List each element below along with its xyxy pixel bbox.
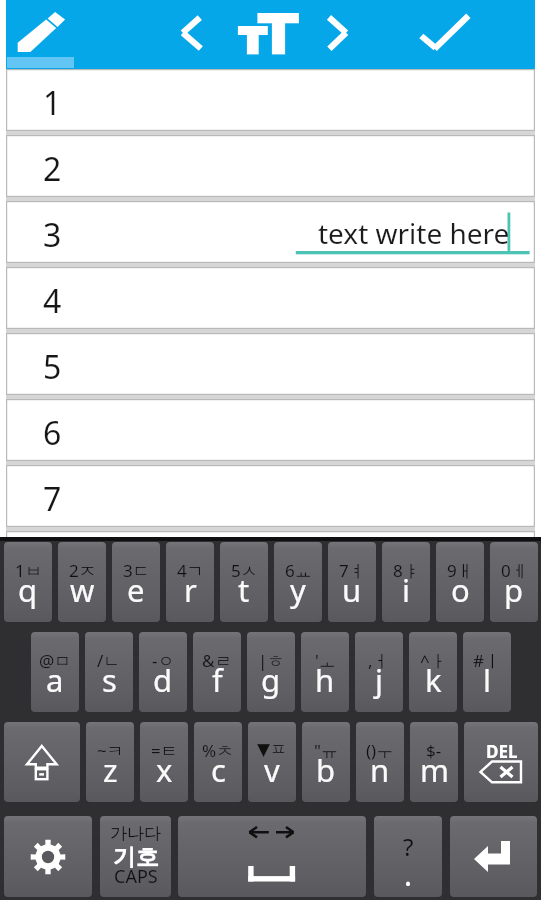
button[interactable]: $- [410, 722, 458, 802]
staticText: CAPS [114, 864, 158, 889]
button[interactable]: @ㅁ [31, 632, 79, 712]
button[interactable]: 'ㅗ [301, 632, 349, 712]
button[interactable]: 3ㄷ [112, 542, 160, 622]
staticText: $- [426, 739, 442, 762]
button[interactable]: Punctuation [374, 816, 442, 897]
staticText: w [70, 569, 95, 611]
staticText: ^ㅏ [420, 649, 447, 672]
staticText: "ㅠ [314, 739, 338, 762]
button[interactable]: 5ㅅ [220, 542, 268, 622]
staticText: b [316, 749, 336, 791]
button[interactable]: ,ㅓ [355, 632, 403, 712]
staticText: 0ㅔ [501, 559, 528, 582]
staticText: 7 [43, 477, 62, 521]
button[interactable]: Done [414, 0, 490, 69]
button[interactable]: |ㅎ [247, 632, 295, 712]
button[interactable]: 2 [6, 135, 535, 197]
staticText: |ㅎ [258, 649, 285, 672]
staticText: 3 [43, 213, 62, 257]
staticText: p [504, 569, 524, 611]
staticText: j [375, 659, 383, 701]
staticText: =ㅌ [151, 739, 178, 762]
button[interactable]: Next [318, 0, 360, 69]
staticText: d [153, 659, 173, 701]
staticText: text write here [318, 214, 510, 252]
staticText: 4 [43, 279, 62, 323]
button[interactable]: Edit [6, 0, 74, 69]
button[interactable]: Delete [464, 722, 538, 802]
staticText: 6ㅛ [285, 559, 312, 582]
button[interactable]: %ㅊ [194, 722, 242, 802]
staticText: DEL [486, 740, 518, 763]
staticText: 5 [43, 345, 62, 389]
staticText: 1ㅂ [15, 559, 42, 582]
staticText: 4ㄱ [177, 559, 204, 582]
staticText: @ㅁ [39, 649, 72, 672]
button[interactable]: Space [178, 816, 366, 897]
staticText: 3ㄷ [123, 559, 150, 582]
button[interactable]: 7 [6, 465, 535, 527]
staticText: h [315, 659, 335, 701]
staticText: ▼ㅍ [257, 739, 288, 760]
staticText: q [18, 569, 38, 611]
button[interactable]: Settings [4, 816, 92, 897]
staticText: f [212, 659, 223, 701]
button[interactable]: ~ㅋ [86, 722, 134, 802]
staticText: &ㄹ [202, 649, 232, 672]
staticText: t [238, 569, 250, 611]
button[interactable]: ^ㅏ [409, 632, 457, 712]
staticText: e [127, 569, 145, 611]
button[interactable]: =ㅌ [140, 722, 188, 802]
staticText: ? [403, 830, 414, 863]
button[interactable]: #ㅣ [463, 632, 511, 712]
staticText: ()ㅜ [366, 739, 394, 762]
button[interactable]: Text size [232, 0, 304, 69]
button[interactable]: 1ㅂ [4, 542, 52, 622]
button[interactable]: 6 [6, 399, 535, 461]
staticText: 6 [43, 411, 62, 455]
staticText: 기호 [113, 843, 159, 872]
staticText: 2 [43, 147, 62, 191]
button[interactable]: 7ㅕ [328, 542, 376, 622]
button[interactable]: -ㅇ [139, 632, 187, 712]
button[interactable]: 3 [6, 201, 535, 263]
button[interactable]: 2ㅈ [58, 542, 106, 622]
button[interactable]: &ㄹ [193, 632, 241, 712]
button[interactable]: ()ㅜ [356, 722, 404, 802]
staticText: z [103, 749, 118, 791]
staticText: y [290, 569, 306, 611]
staticText: 'ㅗ [315, 649, 336, 672]
button[interactable]: Shift [4, 722, 80, 802]
button[interactable]: 1 [6, 69, 535, 131]
button[interactable]: Previous [174, 0, 216, 69]
button[interactable]: "ㅠ [302, 722, 350, 802]
button[interactable]: 8ㅑ [382, 542, 430, 622]
button[interactable]: ▼ㅍ [248, 722, 296, 802]
button[interactable]: 6ㅛ [274, 542, 322, 622]
staticText: i [402, 569, 410, 611]
button[interactable]: 4 [6, 267, 535, 329]
staticText: s [102, 659, 117, 701]
staticText: m [420, 749, 449, 791]
staticText: 9ㅐ [447, 559, 474, 582]
button[interactable]: 5 [6, 333, 535, 395]
staticText: r [184, 569, 197, 611]
button[interactable]: Enter [450, 816, 537, 897]
staticText: x [156, 749, 173, 791]
button[interactable]: 4ㄱ [166, 542, 214, 622]
staticText: o [451, 569, 470, 611]
staticText: 1 [43, 81, 62, 125]
button[interactable]: 9ㅐ [436, 542, 484, 622]
staticText: . [404, 854, 413, 895]
staticText: l [483, 659, 491, 701]
staticText: n [370, 749, 390, 791]
staticText: #ㅣ [473, 649, 501, 672]
button[interactable]: 0ㅔ [490, 542, 538, 622]
button[interactable]: Language [100, 816, 171, 897]
staticText: k [425, 659, 442, 701]
button[interactable]: /ㄴ [85, 632, 133, 712]
staticText: v [264, 749, 280, 791]
staticText: c [211, 749, 226, 791]
staticText: g [261, 659, 281, 701]
staticText: /ㄴ [97, 649, 121, 672]
